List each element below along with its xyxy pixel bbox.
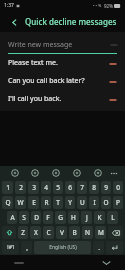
button[interactable]: F [43, 211, 53, 224]
button[interactable]: R [41, 196, 51, 209]
button[interactable]: W [15, 196, 26, 209]
staticText: T [56, 198, 60, 207]
staticText: 8 [92, 183, 96, 192]
button[interactable]: !#1 [2, 241, 19, 254]
button[interactable]: B [69, 226, 80, 239]
button[interactable]: M [95, 226, 106, 239]
staticText: P [116, 198, 120, 207]
staticText: J [86, 213, 88, 222]
staticText: . [98, 243, 100, 252]
button[interactable]: English (US) [34, 241, 91, 254]
button[interactable]: Y [65, 196, 75, 209]
button[interactable]: Remove message [108, 77, 117, 86]
staticText: N [85, 228, 90, 237]
button[interactable]: 4 [41, 181, 51, 194]
staticText: S [22, 213, 26, 222]
staticText: Write new message [8, 40, 111, 50]
staticText: X [34, 228, 38, 237]
button[interactable]: X [30, 226, 41, 239]
button[interactable]: Z [18, 226, 28, 239]
staticText: 6 [68, 183, 72, 192]
staticText: 4 [44, 183, 48, 192]
staticText: V [60, 228, 64, 237]
button[interactable]: C [43, 226, 54, 239]
button[interactable]: Remove message [108, 95, 117, 104]
staticText: Z [21, 228, 25, 237]
staticText: Q [5, 198, 11, 207]
button[interactable]: T [53, 196, 63, 209]
staticText: !#1 [7, 244, 15, 251]
button[interactable]: I [89, 196, 99, 209]
staticText: I [93, 198, 96, 207]
staticText: R [44, 198, 49, 207]
staticText: Y [68, 198, 72, 207]
staticText: F [46, 213, 50, 222]
button[interactable]: 9 [101, 181, 111, 194]
button[interactable]: G [55, 211, 66, 224]
button[interactable]: 1 [2, 181, 13, 194]
staticText: , [26, 243, 28, 252]
staticText: L [111, 213, 115, 222]
button[interactable]: Clipboard [25, 166, 45, 180]
staticText: • • % [93, 3, 102, 8]
button[interactable]: Voice input [45, 166, 66, 180]
button[interactable]: 0 [113, 181, 123, 194]
button[interactable]: Recents [12, 259, 26, 267]
button[interactable]: Back [6, 14, 22, 30]
staticText: Please text me. [8, 58, 108, 68]
staticText: U [80, 198, 85, 207]
button[interactable]: 7 [77, 181, 87, 194]
staticText: 7 [80, 183, 84, 192]
staticText: 92% [104, 3, 113, 9]
staticText: 0 [116, 183, 120, 192]
button[interactable]: . [93, 241, 104, 254]
button[interactable]: Emoji [5, 166, 25, 180]
staticText: I'll call you back. [8, 94, 108, 104]
button[interactable]: J [81, 211, 92, 224]
button[interactable]: Write new message [8, 40, 117, 54]
button[interactable]: I'll call you back. [0, 90, 125, 108]
button[interactable]: Can you call back later? [0, 72, 125, 90]
button[interactable]: N [82, 226, 93, 239]
staticText: K [97, 213, 102, 222]
staticText: M [98, 228, 104, 237]
staticText: 2 [19, 183, 23, 192]
button[interactable]: L [107, 211, 118, 224]
button[interactable]: , [21, 241, 32, 254]
button[interactable]: 3 [28, 181, 39, 194]
button[interactable]: Q [2, 196, 13, 209]
button[interactable]: A [7, 211, 17, 224]
staticText: 1:37 [4, 2, 14, 9]
button[interactable]: More options [108, 166, 120, 180]
button[interactable]: V [56, 226, 67, 239]
button[interactable]: 5 [53, 181, 63, 194]
button[interactable]: H [68, 211, 79, 224]
button[interactable]: Enter [106, 241, 123, 254]
button[interactable]: Settings [87, 166, 108, 180]
button[interactable]: S [19, 211, 29, 224]
staticText: A [10, 213, 15, 222]
staticText: G [58, 213, 63, 222]
staticText: Can you call back later? [8, 76, 108, 86]
staticText: E [32, 198, 36, 207]
button[interactable]: E [28, 196, 39, 209]
button[interactable]: U [77, 196, 87, 209]
button[interactable]: K [94, 211, 105, 224]
staticText: C [46, 228, 51, 237]
button[interactable]: Remove message [108, 59, 117, 68]
button[interactable]: Translate [66, 166, 87, 180]
staticText: D [34, 213, 39, 222]
button[interactable]: Please text me. [0, 54, 125, 72]
button[interactable]: Backspace [108, 226, 123, 239]
button[interactable]: Hide keyboard [101, 258, 111, 268]
staticText: H [71, 213, 76, 222]
staticText: Quick decline messages [25, 16, 117, 27]
button[interactable]: D [31, 211, 41, 224]
button[interactable]: P [113, 196, 123, 209]
button[interactable]: Shift [2, 226, 16, 239]
button[interactable]: 2 [15, 181, 26, 194]
button[interactable]: O [101, 196, 111, 209]
button[interactable]: 8 [89, 181, 99, 194]
button[interactable]: 6 [65, 181, 75, 194]
staticText: 5 [56, 183, 60, 192]
